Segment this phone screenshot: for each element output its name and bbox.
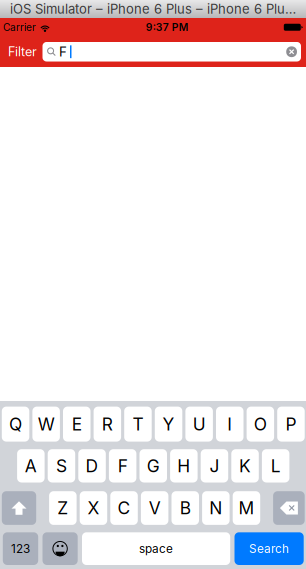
button[interactable]: T: [124, 407, 152, 442]
staticText: T: [132, 414, 143, 435]
button[interactable]: G: [139, 449, 167, 482]
staticText: V: [149, 498, 161, 519]
staticText: M: [238, 498, 254, 519]
staticText: J: [209, 455, 219, 476]
button[interactable]: Emoji: [42, 532, 78, 565]
button[interactable]: F: [109, 449, 136, 482]
staticText: P: [285, 414, 296, 435]
button[interactable]: Delete: [273, 491, 305, 525]
button[interactable]: I: [216, 407, 243, 442]
staticText: Search: [249, 542, 289, 556]
button[interactable]: M: [233, 491, 260, 525]
staticText: O: [254, 414, 267, 435]
staticText: 9:37 PM: [146, 21, 189, 34]
button[interactable]: B: [171, 491, 199, 525]
button[interactable]: J: [201, 449, 228, 482]
staticText: W: [38, 414, 55, 435]
staticText: U: [193, 414, 206, 435]
button[interactable]: D: [78, 449, 106, 482]
staticText: B: [180, 498, 191, 519]
button[interactable]: H: [170, 449, 198, 482]
staticText: N: [209, 498, 222, 519]
staticText: H: [177, 455, 190, 476]
button[interactable]: N: [202, 491, 230, 525]
button[interactable]: R: [94, 407, 121, 442]
button[interactable]: Shift: [2, 491, 36, 525]
staticText: Carrier: [3, 21, 36, 33]
button[interactable]: space: [82, 532, 230, 565]
staticText: G: [147, 455, 160, 476]
button[interactable]: A: [17, 449, 45, 482]
button[interactable]: S: [48, 449, 75, 482]
staticText: Q: [9, 414, 22, 435]
staticText: Y: [163, 414, 175, 435]
button[interactable]: E: [63, 407, 90, 442]
button[interactable]: Search: [234, 532, 304, 565]
button[interactable]: X: [80, 491, 107, 525]
staticText: D: [85, 455, 98, 476]
staticText: iOS Simulator – iPhone 6 Plus – iPhone 6…: [10, 1, 296, 17]
button[interactable]: O: [247, 407, 274, 442]
button[interactable]: Q: [2, 407, 29, 442]
staticText: C: [117, 498, 130, 519]
button[interactable]: Clear text: [286, 46, 297, 57]
button[interactable]: K: [231, 449, 259, 482]
staticText: 123: [11, 542, 30, 556]
button[interactable]: U: [185, 407, 213, 442]
button[interactable]: Y: [155, 407, 182, 442]
staticText: F: [118, 455, 128, 476]
staticText: K: [239, 455, 251, 476]
button[interactable]: L: [262, 449, 289, 482]
staticText: Z: [57, 498, 68, 519]
staticText: S: [56, 455, 67, 476]
staticText: A: [25, 455, 37, 476]
button[interactable]: V: [141, 491, 168, 525]
staticText: R: [102, 414, 113, 435]
staticText: L: [271, 455, 281, 476]
button[interactable]: P: [277, 407, 305, 442]
staticText: Filter: [8, 44, 37, 59]
button[interactable]: Z: [49, 491, 77, 525]
staticText: I: [227, 414, 232, 435]
staticText: space: [139, 542, 173, 556]
button[interactable]: C: [110, 491, 138, 525]
staticText: X: [87, 498, 99, 519]
staticText: F: [59, 44, 67, 60]
staticText: E: [72, 414, 82, 435]
button[interactable]: 123: [3, 532, 38, 565]
button[interactable]: W: [32, 407, 60, 442]
